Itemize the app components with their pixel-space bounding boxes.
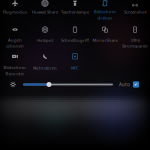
button[interactable]: Taschenlampe [60,0,90,23]
staticText: Screenshot [124,9,146,15]
button[interactable]: Brightness slider [23,78,113,90]
staticText: Bildschirm- [3,65,26,70]
button[interactable]: Brightness [6,78,20,90]
button[interactable]: Auto [114,78,144,90]
button[interactable]: Screenshot [120,0,150,23]
button[interactable]: Bildschirm [90,0,120,23]
button[interactable]: Huawei Share [30,0,60,23]
button[interactable]: MirrorShare [90,27,120,50]
button[interactable]: Nicht stören [30,54,60,77]
staticText: Stromsparen [122,43,148,49]
staticText: Ultra [130,37,139,43]
staticText: Auto [119,81,130,87]
button[interactable]: Flugmodus [0,0,30,23]
button[interactable]: Bildschirm- [0,54,30,77]
staticText: Schnellzugriff [61,37,89,43]
staticText: drehen [97,15,112,21]
staticText: Augen [8,37,22,43]
button[interactable]: Augen [0,27,30,50]
staticText: Flugmodus [3,9,27,15]
staticText: Nicht stören [33,65,57,71]
staticText: MirrorShare [92,37,117,43]
staticText: Huawei Share [32,9,58,15]
button[interactable]: NFC [60,54,90,77]
staticText: Taschenlampe [61,9,89,15]
button[interactable]: Hotspot [30,27,60,50]
staticText: Recorder [5,71,24,76]
button[interactable]: Ultra [120,27,150,50]
button[interactable]: Schnellzugriff [60,27,90,50]
staticText: Hotspot [37,37,53,43]
staticText: schonen [6,43,24,49]
staticText: NFC [71,65,79,71]
staticText: Bildschirm [94,9,116,14]
